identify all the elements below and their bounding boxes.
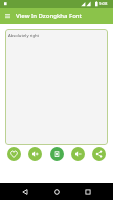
- button[interactable]: Menu: [2, 11, 13, 22]
- button[interactable]: Back: [19, 186, 31, 198]
- button[interactable]: Copy: [50, 147, 64, 161]
- button[interactable]: Absolutely right: [5, 29, 108, 145]
- button[interactable]: Share: [92, 147, 106, 161]
- button[interactable]: Home: [51, 186, 63, 198]
- button[interactable]: Favourite: [7, 147, 21, 161]
- button[interactable]: Recents: [82, 186, 94, 198]
- button[interactable]: Volume down: [71, 147, 85, 161]
- button[interactable]: Volume up: [28, 147, 42, 161]
- staticText: 9:08: [99, 1, 108, 7]
- staticText: Absolutely right: [8, 33, 40, 39]
- staticText: View In Dzongkha Font: [16, 12, 82, 20]
